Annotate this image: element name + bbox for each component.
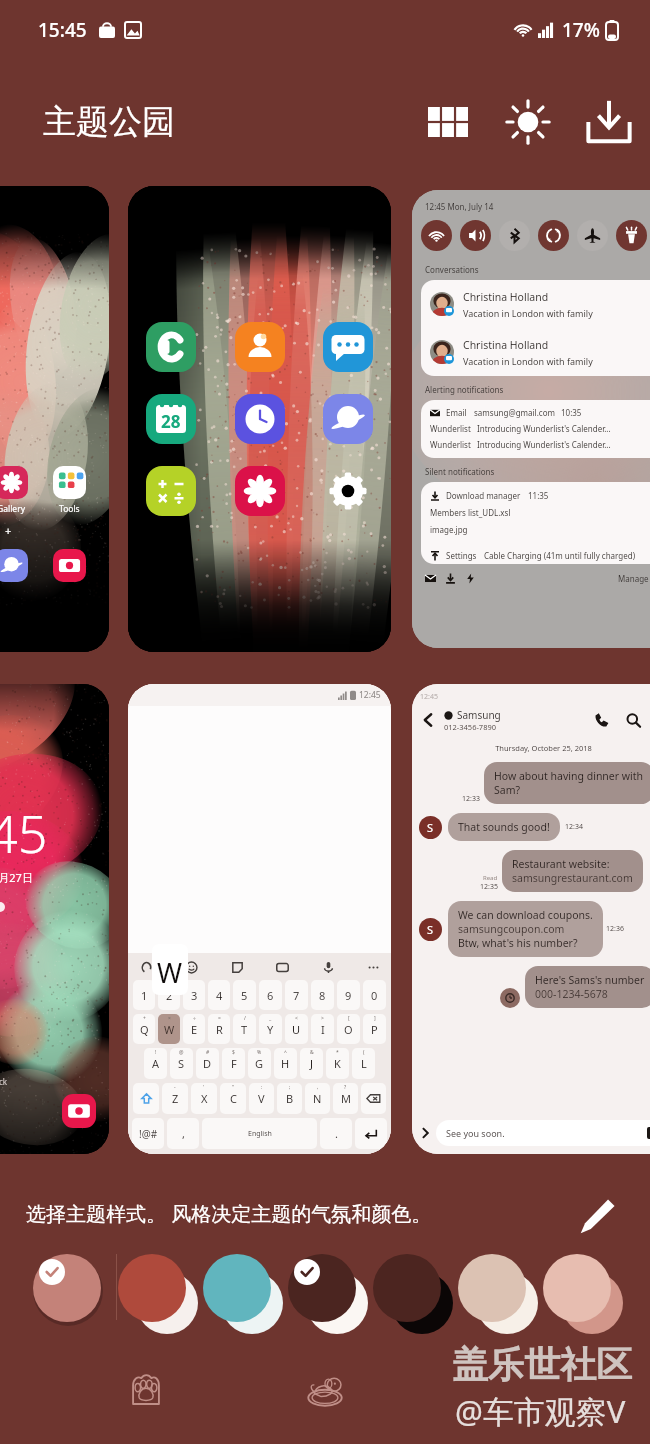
button[interactable] [456,1252,541,1324]
button[interactable]: + [133,1014,155,1044]
button[interactable] [460,220,491,251]
button[interactable]: 12:45 [128,684,391,1154]
button[interactable] [421,220,452,251]
button[interactable]: 3 [183,980,205,1010]
button[interactable]: Restaurant website: [502,850,643,892]
button[interactable]: ! [144,1048,167,1079]
button[interactable]: 4 [208,980,230,1010]
button[interactable]: # [196,1048,219,1079]
button[interactable]: Keyboard tool [273,958,291,976]
button[interactable]: [ [337,1014,360,1044]
button[interactable]: 8 [311,980,334,1010]
button[interactable]: 45 [0,684,109,1154]
button[interactable] [31,1252,116,1324]
button[interactable]: Brightness [500,94,556,150]
button[interactable] [286,1252,371,1324]
button[interactable]: Keyboard tool [137,958,155,976]
button[interactable] [0,466,28,499]
button[interactable]: Edit [570,1188,626,1244]
button[interactable]: Camera [62,1094,96,1128]
button[interactable] [0,549,28,582]
button[interactable]: Keyboard tool [319,958,337,976]
button[interactable]: Keyboard tool [228,958,246,976]
button[interactable]: Keyboard tool [182,958,200,976]
staticText: 12:45 Mon, July 14 [425,201,494,212]
button[interactable]: @ [170,1048,193,1079]
button[interactable] [53,549,86,582]
button[interactable]: !@# [132,1118,164,1149]
button[interactable]: & [300,1048,323,1079]
button[interactable]: × [158,1014,180,1044]
button[interactable] [371,1252,456,1324]
button[interactable]: Search [622,709,644,731]
button[interactable]: " [220,1083,246,1114]
button[interactable] [616,220,647,251]
staticText: That sounds good! [458,820,550,834]
button[interactable]: 12:45 Mon, July 14 [412,190,650,648]
button[interactable]: Download [581,94,637,150]
button[interactable] [201,1252,286,1324]
button[interactable]: > [311,1014,334,1044]
button[interactable]: ÷ [183,1014,205,1044]
button[interactable]: English [202,1118,317,1149]
button[interactable]: 1 [133,980,155,1010]
button[interactable]: : [249,1083,274,1114]
button[interactable]: ( [352,1048,375,1079]
button[interactable]: How about having dinner with [484,762,650,804]
staticText: Q [140,1022,149,1037]
button[interactable] [133,1083,159,1114]
staticText: Y [267,1022,274,1037]
button[interactable]: , [305,1083,330,1114]
button[interactable]: 5 [233,980,256,1010]
button[interactable]: Paw [117,1360,175,1418]
button[interactable]: Call [590,709,612,731]
button[interactable]: Download manager [421,482,650,564]
button[interactable] [577,220,608,251]
button[interactable]: - [162,1083,188,1114]
button[interactable]: ^ [274,1048,297,1079]
button[interactable]: , [167,1118,199,1149]
button[interactable]: Email [421,400,650,458]
button[interactable]: 12:45 [412,684,650,1154]
button[interactable]: 28 [146,394,196,444]
button[interactable]: More [296,1360,354,1418]
staticText: [ [348,1015,350,1022]
staticText: Christina Holland [463,290,549,304]
button[interactable] [361,1083,386,1114]
button[interactable] [499,220,530,251]
button[interactable] [53,466,86,499]
button[interactable]: 9 [337,980,360,1010]
button[interactable]: Christina Holland [421,280,650,376]
button[interactable]: ' [191,1083,217,1114]
button[interactable]: We can download coupons. [448,901,603,957]
button[interactable]: 28 [128,186,391,652]
button[interactable]: 0 [363,980,386,1010]
button[interactable]: * [326,1048,349,1079]
staticText: ! [155,1049,157,1056]
button[interactable]: 7 [285,980,308,1010]
button[interactable]: < [285,1014,308,1044]
button[interactable] [538,220,569,251]
button[interactable]: . [320,1118,352,1149]
button[interactable]: Grid view [420,94,476,150]
button[interactable]: ? [333,1083,358,1114]
button[interactable]: That sounds good! [448,813,560,841]
button[interactable]: Gallery [0,186,109,652]
staticText: Members list_UDL.xsl [430,507,511,518]
button[interactable]: % [248,1048,271,1079]
button[interactable]: $ [222,1048,245,1079]
button[interactable]: 2 [158,980,180,1010]
button[interactable]: Here's Sams's number [525,966,650,1008]
button[interactable]: ; [277,1083,302,1114]
button[interactable]: 6 [259,980,282,1010]
button[interactable] [116,1252,201,1324]
staticText: 7 [293,988,300,1003]
button[interactable]: / [233,1014,256,1044]
button[interactable] [355,1118,387,1149]
button[interactable]: _ [259,1014,282,1044]
button[interactable]: = [208,1014,230,1044]
button[interactable] [541,1252,626,1324]
staticText: @ [179,1049,184,1056]
button[interactable]: ] [363,1014,386,1044]
button[interactable]: Keyboard tool [364,958,382,976]
